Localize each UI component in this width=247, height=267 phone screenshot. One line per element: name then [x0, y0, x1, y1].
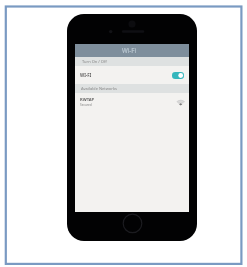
staticText: Available Networks — [81, 86, 117, 91]
staticText: RWTAP — [80, 97, 95, 103]
button[interactable]: WI-FI — [75, 66, 189, 84]
button[interactable]: Wi-Fi toggle — [172, 72, 184, 79]
button[interactable]: RWTAP — [75, 93, 189, 110]
other: Signal strength, secured network — [176, 97, 185, 107]
staticText: WI-FI — [80, 72, 92, 78]
staticText: Turn On / Off — [82, 59, 107, 64]
staticText: Wi-Fi — [122, 46, 137, 54]
staticText: Secured — [80, 103, 92, 107]
